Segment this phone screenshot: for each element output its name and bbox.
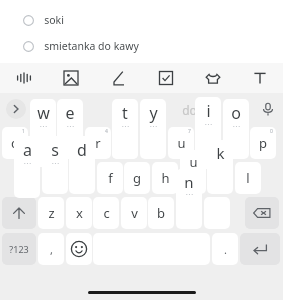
button[interactable]: ,: [38, 233, 64, 265]
button[interactable]: h: [152, 162, 178, 194]
button[interactable]: Voice: [0, 63, 47, 93]
button[interactable]: p: [250, 127, 276, 159]
staticText: 1: [22, 128, 25, 135]
button[interactable]: y: [140, 99, 166, 147]
button[interactable]: Enter: [240, 233, 280, 265]
button[interactable]: .: [212, 233, 238, 265]
staticText: v: [131, 204, 138, 222]
staticText: l: [246, 169, 250, 187]
button[interactable]: u: [180, 150, 206, 180]
button[interactable]: u: [168, 127, 194, 159]
staticText: f: [108, 169, 113, 187]
staticText: 4: [105, 128, 108, 135]
staticText: g: [133, 169, 141, 187]
button[interactable]: v: [121, 197, 147, 229]
staticText: p: [259, 134, 267, 152]
button[interactable]: t: [112, 99, 138, 159]
button[interactable]: b: [148, 197, 174, 229]
staticText: ,: [50, 242, 53, 257]
button[interactable]: s: [42, 136, 68, 184]
staticText: b: [157, 204, 165, 222]
button[interactable]: 9: [223, 127, 249, 159]
staticText: h: [161, 169, 170, 187]
button[interactable]: Draw: [94, 63, 141, 93]
button[interactable]: c: [93, 197, 119, 229]
button[interactable]: [42, 162, 68, 194]
button[interactable]: Voice input: [258, 99, 278, 119]
button[interactable]: x: [66, 197, 92, 229]
button[interactable]: a: [14, 136, 40, 198]
button[interactable]: i: [195, 97, 221, 169]
button[interactable]: g: [124, 162, 150, 194]
button[interactable]: z: [38, 197, 64, 229]
other: Shift: [10, 204, 28, 222]
staticText: z: [48, 204, 55, 222]
button[interactable]: Stickers: [189, 63, 236, 93]
button[interactable]: Checklist: [142, 63, 189, 93]
staticText: soki: [44, 13, 64, 27]
staticText: 0: [270, 128, 273, 135]
other: Enter: [250, 239, 270, 259]
staticText: ?123: [9, 243, 29, 255]
button[interactable]: More suggestions: [6, 99, 26, 119]
other: Emoji: [70, 240, 88, 258]
button[interactable]: Image: [47, 63, 94, 93]
button[interactable]: d: [69, 136, 95, 176]
button[interactable]: smietanka do kawy: [0, 33, 283, 59]
staticText: r: [95, 134, 101, 152]
button[interactable]: Backspace: [245, 197, 279, 229]
staticText: n: [184, 172, 194, 192]
staticText: q: [11, 134, 19, 152]
button[interactable]: k: [207, 140, 233, 186]
button[interactable]: Shift: [2, 197, 36, 229]
button[interactable]: f: [97, 162, 123, 194]
button[interactable]: w: [30, 99, 56, 167]
button[interactable]: 8: [195, 127, 221, 159]
staticText: 7: [188, 128, 191, 135]
button[interactable]: q: [2, 127, 28, 159]
other: Backspace: [251, 202, 273, 224]
staticText: .: [224, 242, 227, 257]
staticText: i: [206, 100, 211, 122]
button[interactable]: Emoji: [66, 233, 92, 265]
button[interactable]: r: [85, 127, 111, 159]
button[interactable]: o: [223, 99, 249, 149]
staticText: a: [23, 139, 32, 161]
button[interactable]: ?123: [2, 233, 36, 265]
staticText: d: [77, 139, 87, 161]
button[interactable]: [180, 162, 206, 194]
button[interactable]: 3: [57, 127, 83, 159]
staticText: t: [122, 102, 128, 124]
staticText: smietanka do kawy: [44, 39, 139, 53]
button[interactable]: e: [57, 99, 83, 143]
staticText: u: [177, 134, 186, 152]
staticText: s: [51, 139, 59, 161]
staticText: u: [189, 153, 198, 171]
staticText: y: [149, 102, 158, 124]
staticText: do: [182, 102, 197, 118]
button[interactable]: 2: [30, 127, 56, 159]
button[interactable]: soki: [0, 7, 283, 33]
staticText: k: [216, 143, 225, 163]
staticText: c: [103, 204, 110, 222]
button[interactable]: n: [176, 169, 202, 225]
button[interactable]: l: [235, 162, 261, 194]
button[interactable]: Text: [236, 63, 283, 93]
staticText: e: [65, 102, 75, 124]
staticText: x: [76, 204, 83, 222]
staticText: w: [37, 102, 50, 124]
